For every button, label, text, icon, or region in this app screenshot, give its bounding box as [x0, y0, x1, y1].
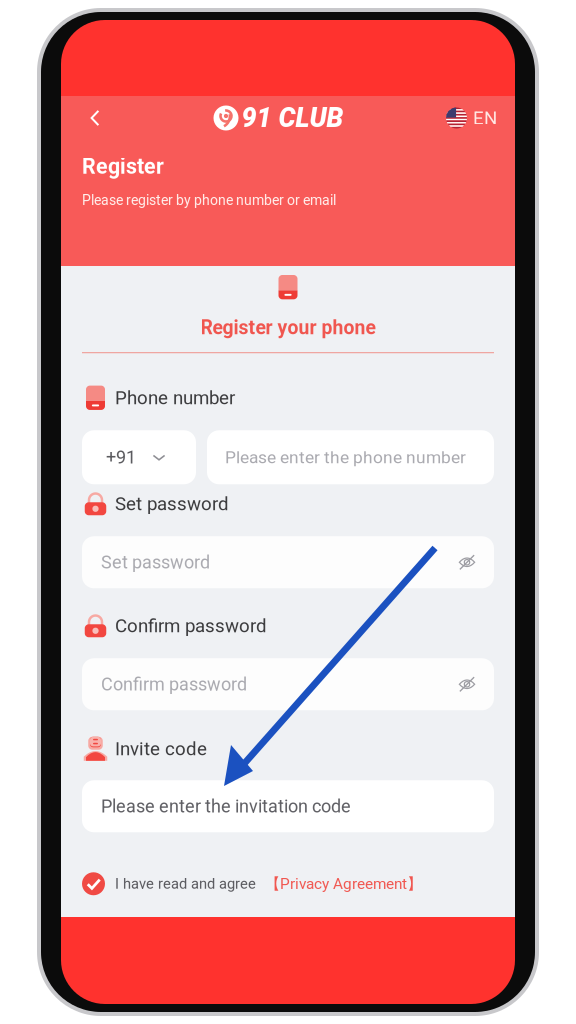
- button[interactable]: Country code +91: [82, 430, 196, 484]
- button[interactable]: Language: English: [446, 102, 497, 134]
- staticText: Confirm password: [115, 615, 267, 637]
- staticText: EN: [473, 107, 497, 129]
- staticText: +91: [106, 447, 136, 468]
- button[interactable]: Back: [79, 102, 111, 134]
- staticText: Please enter the phone number: [225, 447, 466, 467]
- staticText: Confirm password: [101, 674, 247, 695]
- staticText: I have read and agree: [115, 875, 256, 892]
- staticText: Invite code: [115, 738, 207, 760]
- staticText: Please register by phone number or email: [82, 192, 336, 208]
- staticText: Set password: [115, 493, 229, 515]
- staticText: Phone number: [115, 387, 235, 409]
- staticText: Please enter the invitation code: [101, 796, 351, 817]
- button[interactable]: Please enter the invitation code: [82, 780, 494, 832]
- button[interactable]: Toggle password visibility: [453, 670, 481, 698]
- button[interactable]: Toggle password visibility: [453, 548, 481, 576]
- button[interactable]: I have read and agree: [82, 870, 494, 897]
- staticText: 91 CLUB: [241, 102, 343, 134]
- staticText: Register your phone: [200, 316, 375, 339]
- staticText: Set password: [101, 552, 210, 573]
- button[interactable]: Please enter the phone number: [207, 430, 494, 484]
- staticText: 【Privacy Agreement】: [265, 874, 422, 893]
- staticText: Register: [82, 154, 164, 179]
